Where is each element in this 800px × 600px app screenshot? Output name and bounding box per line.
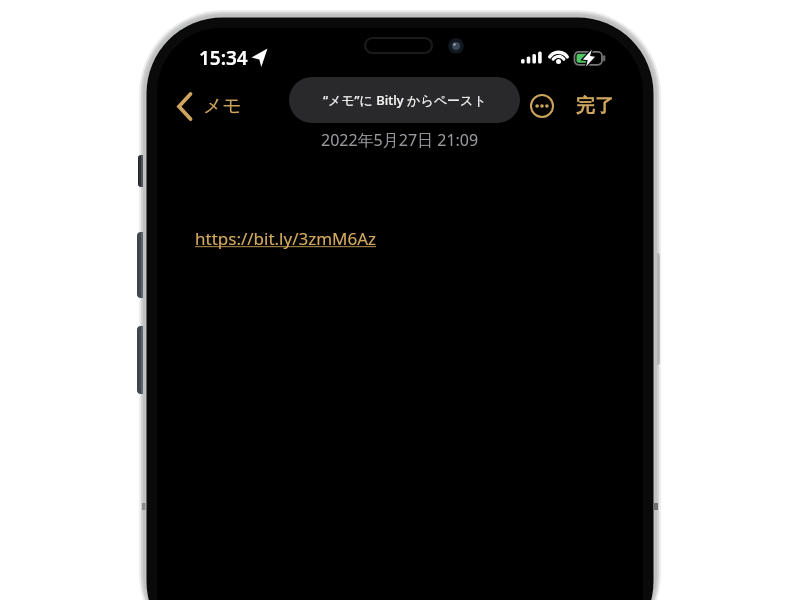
staticText: 完了 xyxy=(576,94,614,118)
button[interactable]: 完了 xyxy=(570,90,620,122)
button[interactable]: https://bit.ly/3zmM6Az xyxy=(195,227,377,250)
button[interactable] xyxy=(528,92,556,120)
button[interactable]: “メモ”に Bitly からペースト xyxy=(289,77,520,123)
staticText: メモ xyxy=(203,94,242,118)
staticText: “メモ”に Bitly からペースト xyxy=(323,91,487,109)
staticText: 15:34 xyxy=(199,45,248,71)
staticText: 2022年5月27日 21:09 xyxy=(321,129,479,151)
staticText: https://bit.ly/3zmM6Az xyxy=(195,227,377,250)
button[interactable]: メモ xyxy=(172,88,242,124)
